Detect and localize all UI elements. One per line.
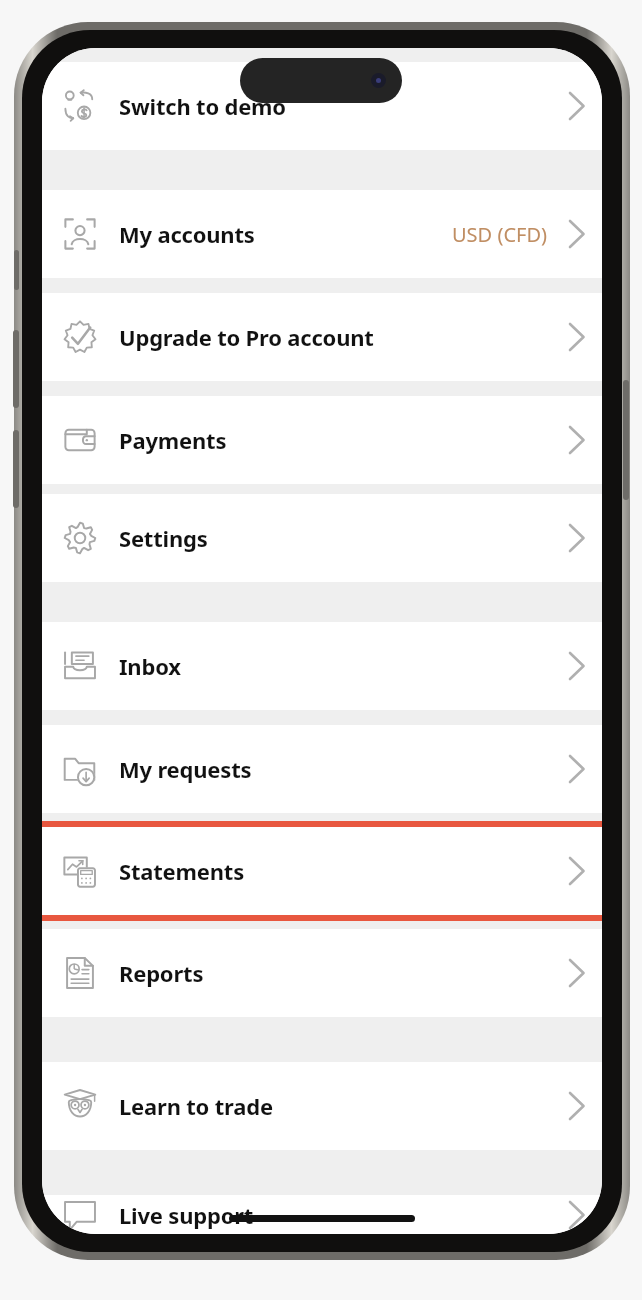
button[interactable]: My accounts xyxy=(42,190,602,278)
staticText: Inbox xyxy=(119,651,181,681)
button[interactable]: Payments xyxy=(42,396,602,484)
staticText: Live support xyxy=(119,1200,254,1230)
staticText: My accounts xyxy=(119,219,255,249)
staticText: Reports xyxy=(119,958,204,988)
other: Volume down xyxy=(13,430,19,508)
button[interactable]: Learn to trade xyxy=(42,1062,602,1150)
button[interactable]: Live support xyxy=(42,1195,602,1234)
button[interactable]: Reports xyxy=(42,929,602,1017)
button[interactable]: Settings xyxy=(42,494,602,582)
staticText: Statements xyxy=(119,856,245,886)
button[interactable]: Inbox xyxy=(42,622,602,710)
staticText: Settings xyxy=(119,523,208,553)
button[interactable]: Upgrade to Pro account xyxy=(42,293,602,381)
other: Silent switch xyxy=(14,250,19,290)
button[interactable]: My requests xyxy=(42,725,602,813)
staticText: Switch to demo xyxy=(119,91,286,121)
other: Volume up xyxy=(13,330,19,408)
staticText: USD (CFD) xyxy=(452,221,548,248)
staticText: Learn to trade xyxy=(119,1091,273,1121)
button[interactable]: Switch to demo xyxy=(42,62,602,150)
button[interactable]: Statements xyxy=(42,821,602,921)
other: Power xyxy=(623,380,629,500)
other: Dynamic Island xyxy=(240,58,402,103)
staticText: Payments xyxy=(119,425,227,455)
staticText: My requests xyxy=(119,754,252,784)
staticText: Upgrade to Pro account xyxy=(119,322,374,352)
